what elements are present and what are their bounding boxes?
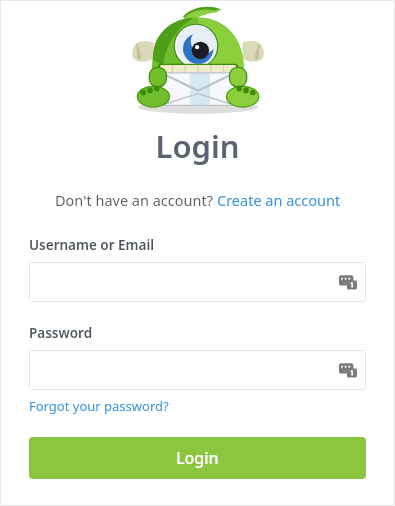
- staticText: Login: [176, 447, 219, 469]
- button[interactable]: Autofill password: [29, 350, 366, 390]
- staticText: Username or Email: [29, 236, 155, 254]
- staticText: Create an account: [217, 190, 341, 210]
- button[interactable]: Create an account: [217, 190, 341, 210]
- button[interactable]: Autofill password: [339, 273, 357, 291]
- button[interactable]: Autofill password: [29, 262, 366, 302]
- button[interactable]: Autofill password: [339, 361, 357, 379]
- staticText: Password: [29, 324, 93, 342]
- button[interactable]: Login: [29, 437, 366, 479]
- staticText: Login: [155, 125, 240, 167]
- button[interactable]: Forgot your password?: [29, 397, 169, 415]
- staticText: Don't have an account?: [55, 190, 217, 210]
- staticText: Forgot your password?: [29, 397, 169, 415]
